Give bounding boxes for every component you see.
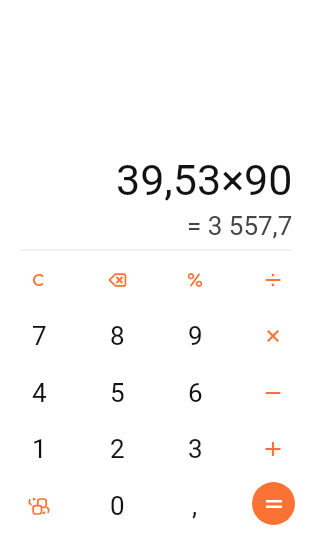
staticText: 39,53×90 <box>116 155 293 205</box>
staticText: 1 <box>32 434 47 464</box>
button[interactable]: Percent <box>156 251 234 308</box>
staticText: 0 <box>110 491 125 521</box>
button[interactable]: 0 <box>78 477 156 534</box>
button[interactable]: Plus <box>234 421 312 477</box>
button[interactable]: 7 <box>0 308 78 364</box>
staticText: 3 <box>188 434 203 464</box>
staticText: , <box>192 491 198 521</box>
button[interactable]: 8 <box>78 308 156 364</box>
staticText: 5 <box>110 378 125 408</box>
button[interactable]: Divide <box>234 251 312 308</box>
staticText: 7 <box>32 321 47 351</box>
button[interactable]: 5 <box>78 364 156 421</box>
staticText: 4 <box>32 378 47 408</box>
button[interactable]: 1 <box>0 421 78 477</box>
button[interactable]: 9 <box>156 308 234 364</box>
staticText: = 3 557,7 <box>187 211 293 241</box>
button[interactable]: 4 <box>0 364 78 421</box>
staticText: 2 <box>110 434 125 464</box>
button[interactable]: Unit converter <box>0 477 78 534</box>
staticText: 8 <box>110 321 125 351</box>
button[interactable]: 3 <box>156 421 234 477</box>
button[interactable]: 6 <box>156 364 234 421</box>
button[interactable]: 2 <box>78 421 156 477</box>
button[interactable]: Equals <box>252 482 295 525</box>
button[interactable]: Backspace <box>78 251 156 308</box>
button[interactable]: , <box>156 477 234 534</box>
staticText: 9 <box>188 321 203 351</box>
button[interactable]: Clear <box>0 251 78 308</box>
staticText: 6 <box>188 378 203 408</box>
button[interactable]: Minus <box>234 364 312 421</box>
button[interactable]: Multiply <box>234 308 312 364</box>
